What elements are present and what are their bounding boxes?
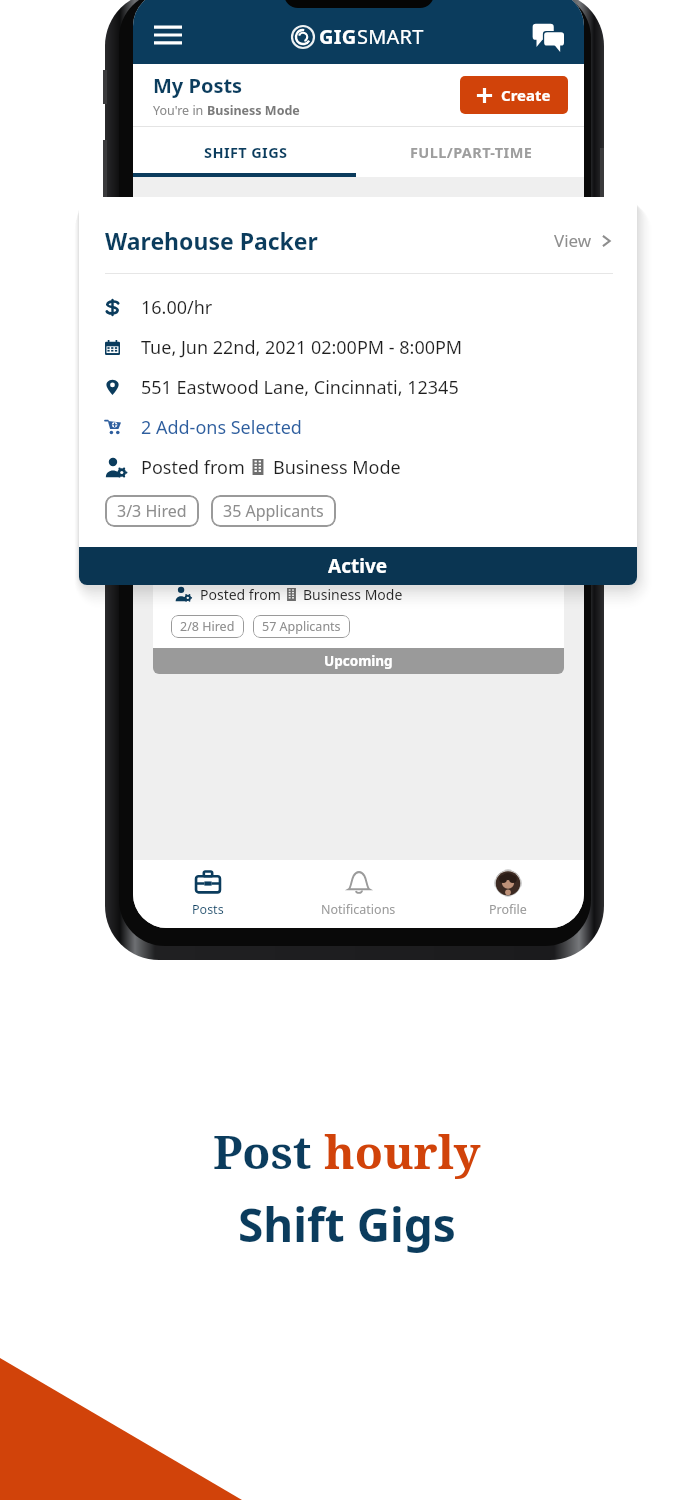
staticText: Notifications <box>321 901 396 918</box>
button[interactable]: Notifications <box>283 868 433 918</box>
staticText: Upcoming <box>324 652 393 670</box>
staticText: GIG <box>319 23 357 50</box>
staticText: You're in <box>153 102 207 119</box>
button[interactable]: Messages <box>530 18 566 54</box>
button[interactable]: 35 Applicants <box>211 495 336 527</box>
staticText: 551 Eastwood Lane, Cincinnati, 12345 <box>141 375 459 400</box>
staticText: FULL/PART-TIME <box>410 142 533 162</box>
staticText: 57 Applicants <box>262 618 341 635</box>
staticText: 551 Eastwood Lane, Cincinnati, 12345 <box>200 525 448 544</box>
button[interactable]: Profile <box>433 868 583 918</box>
staticText: Tue, Jun 22nd, 2021 02:00PM - 8:00PM <box>141 335 463 360</box>
staticText: Shift Gigs <box>238 1193 456 1256</box>
staticText: View <box>554 229 592 252</box>
staticText: My Posts <box>153 72 243 99</box>
staticText: Posted from <box>200 585 285 604</box>
button[interactable]: 2/8 Hired <box>171 615 244 638</box>
staticText: Business Mode <box>207 102 300 119</box>
button[interactable]: Menu <box>151 18 185 52</box>
button[interactable]: Warehouse Packer <box>79 197 637 585</box>
staticText: 3/3 Hired <box>117 500 187 522</box>
button[interactable]: SHIFT GIGS <box>133 127 358 177</box>
button[interactable]: Posts <box>133 868 283 918</box>
staticText: Wed, Jun 23rd, 2021 2:00PM - 8:00PM <box>200 495 445 514</box>
button[interactable]: 12.00/hr <box>153 453 564 674</box>
button[interactable]: 3/3 Hired <box>105 495 199 527</box>
button[interactable]: FULL/PART-TIME <box>358 127 584 177</box>
staticText: 2 Add-ons Selected <box>141 415 302 440</box>
staticText: Profile <box>489 901 527 918</box>
staticText: SMART <box>357 23 424 50</box>
staticText: 16.00/hr <box>141 295 213 320</box>
staticText: Posts <box>192 901 224 918</box>
staticText: Warehouse Packer <box>105 225 554 256</box>
staticText: 12.00/hr <box>200 465 256 484</box>
staticText: Create <box>501 85 551 105</box>
button[interactable]: View <box>554 229 613 252</box>
button[interactable]: Create <box>460 76 568 114</box>
staticText: SHIFT GIGS <box>204 142 288 162</box>
staticText: Business Mode <box>273 455 401 480</box>
staticText: 35 Applicants <box>223 500 324 522</box>
button[interactable]: 57 Applicants <box>253 615 350 638</box>
staticText: Business Mode <box>303 585 403 604</box>
staticText: hourly <box>324 1120 481 1183</box>
staticText: Post <box>213 1120 324 1183</box>
staticText: Posted from <box>141 455 250 480</box>
staticText: Active <box>328 553 388 579</box>
staticText: 2/8 Hired <box>180 618 235 635</box>
